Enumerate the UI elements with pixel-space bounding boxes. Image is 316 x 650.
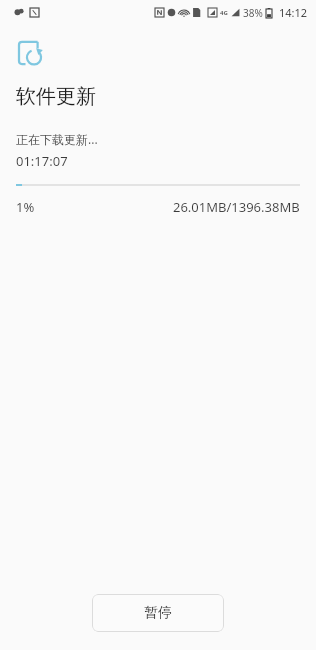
button[interactable]: 暂停	[92, 594, 224, 632]
staticText: 暂停	[144, 604, 172, 622]
staticText: 软件更新	[16, 84, 96, 109]
staticText: 4G	[220, 9, 228, 17]
other: Software update	[16, 40, 46, 70]
staticText: 38%	[243, 6, 263, 20]
staticText: 14:12	[279, 5, 308, 20]
staticText: 26.01MB/1396.38MB	[173, 198, 300, 216]
staticText: 正在下载更新...	[16, 131, 98, 147]
staticText: 01:17:07	[16, 152, 68, 170]
staticText: 1%	[16, 198, 35, 216]
